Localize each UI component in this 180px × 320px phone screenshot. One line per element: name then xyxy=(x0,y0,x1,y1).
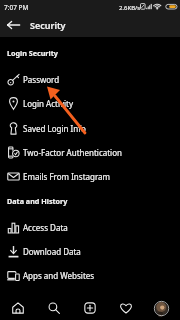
staticText: Access Data xyxy=(23,222,68,233)
button[interactable]: Back xyxy=(0,13,26,37)
button[interactable]: Saved Login Info xyxy=(0,116,180,140)
button[interactable]: Access Data xyxy=(0,215,180,239)
button[interactable]: Create xyxy=(76,296,104,320)
staticText: Apps and Websites xyxy=(23,270,95,281)
button[interactable]: Profile xyxy=(148,296,176,320)
button[interactable]: Search xyxy=(40,296,68,320)
button[interactable]: Apps and Websites xyxy=(0,263,180,287)
staticText: Password xyxy=(23,74,60,85)
staticText: Data and History xyxy=(7,196,68,206)
button[interactable]: Download Data xyxy=(0,239,180,263)
staticText: Login Security xyxy=(7,48,58,58)
button[interactable]: Emails From Instagram xyxy=(0,164,180,188)
button[interactable]: Login Activity xyxy=(0,91,180,115)
button[interactable]: Home xyxy=(4,296,32,320)
button[interactable]: Two-Factor Authentication xyxy=(0,140,180,164)
staticText: Two-Factor Authentication xyxy=(23,147,122,158)
staticText: 2.6KB/s xyxy=(119,4,141,12)
button[interactable]: Password xyxy=(0,67,180,91)
staticText: Download Data xyxy=(23,246,81,257)
staticText: Saved Login Info xyxy=(23,123,86,134)
staticText: Login Activity xyxy=(23,98,74,109)
staticText: 7:07 PM xyxy=(4,3,29,12)
staticText: Emails From Instagram xyxy=(23,171,111,182)
button[interactable]: Activity xyxy=(112,296,140,320)
staticText: Security xyxy=(30,19,66,31)
